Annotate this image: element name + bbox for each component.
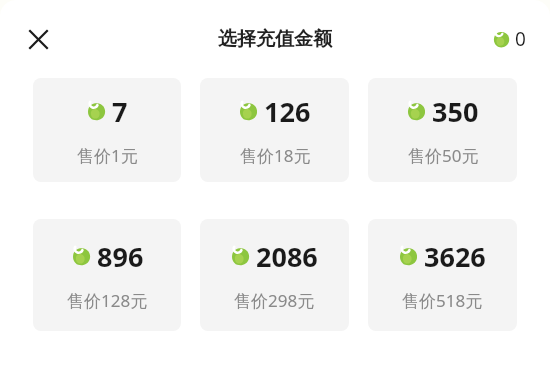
staticText: 售价518元 (402, 289, 483, 312)
staticText: 售价1元 (77, 144, 138, 167)
staticText: 0 (515, 26, 526, 52)
button[interactable]: 2086 (200, 219, 349, 331)
staticText: 售价298元 (234, 289, 315, 312)
staticText: 350 (432, 93, 479, 130)
button[interactable]: 3626 (368, 219, 517, 331)
button[interactable]: 126 (200, 78, 349, 182)
staticText: 售价18元 (240, 144, 311, 167)
button[interactable]: 0 (491, 22, 528, 56)
staticText: 售价50元 (408, 144, 479, 167)
staticText: 选择充值金额 (218, 27, 332, 51)
button[interactable]: 7 (33, 78, 181, 182)
button[interactable]: Close (18, 19, 58, 59)
staticText: 3626 (424, 238, 486, 275)
staticText: 126 (264, 93, 311, 130)
staticText: 7 (112, 93, 128, 130)
staticText: 售价128元 (67, 289, 148, 312)
button[interactable]: 350 (368, 78, 517, 182)
staticText: 896 (97, 238, 144, 275)
staticText: 2086 (256, 238, 318, 275)
button[interactable]: 896 (33, 219, 181, 331)
